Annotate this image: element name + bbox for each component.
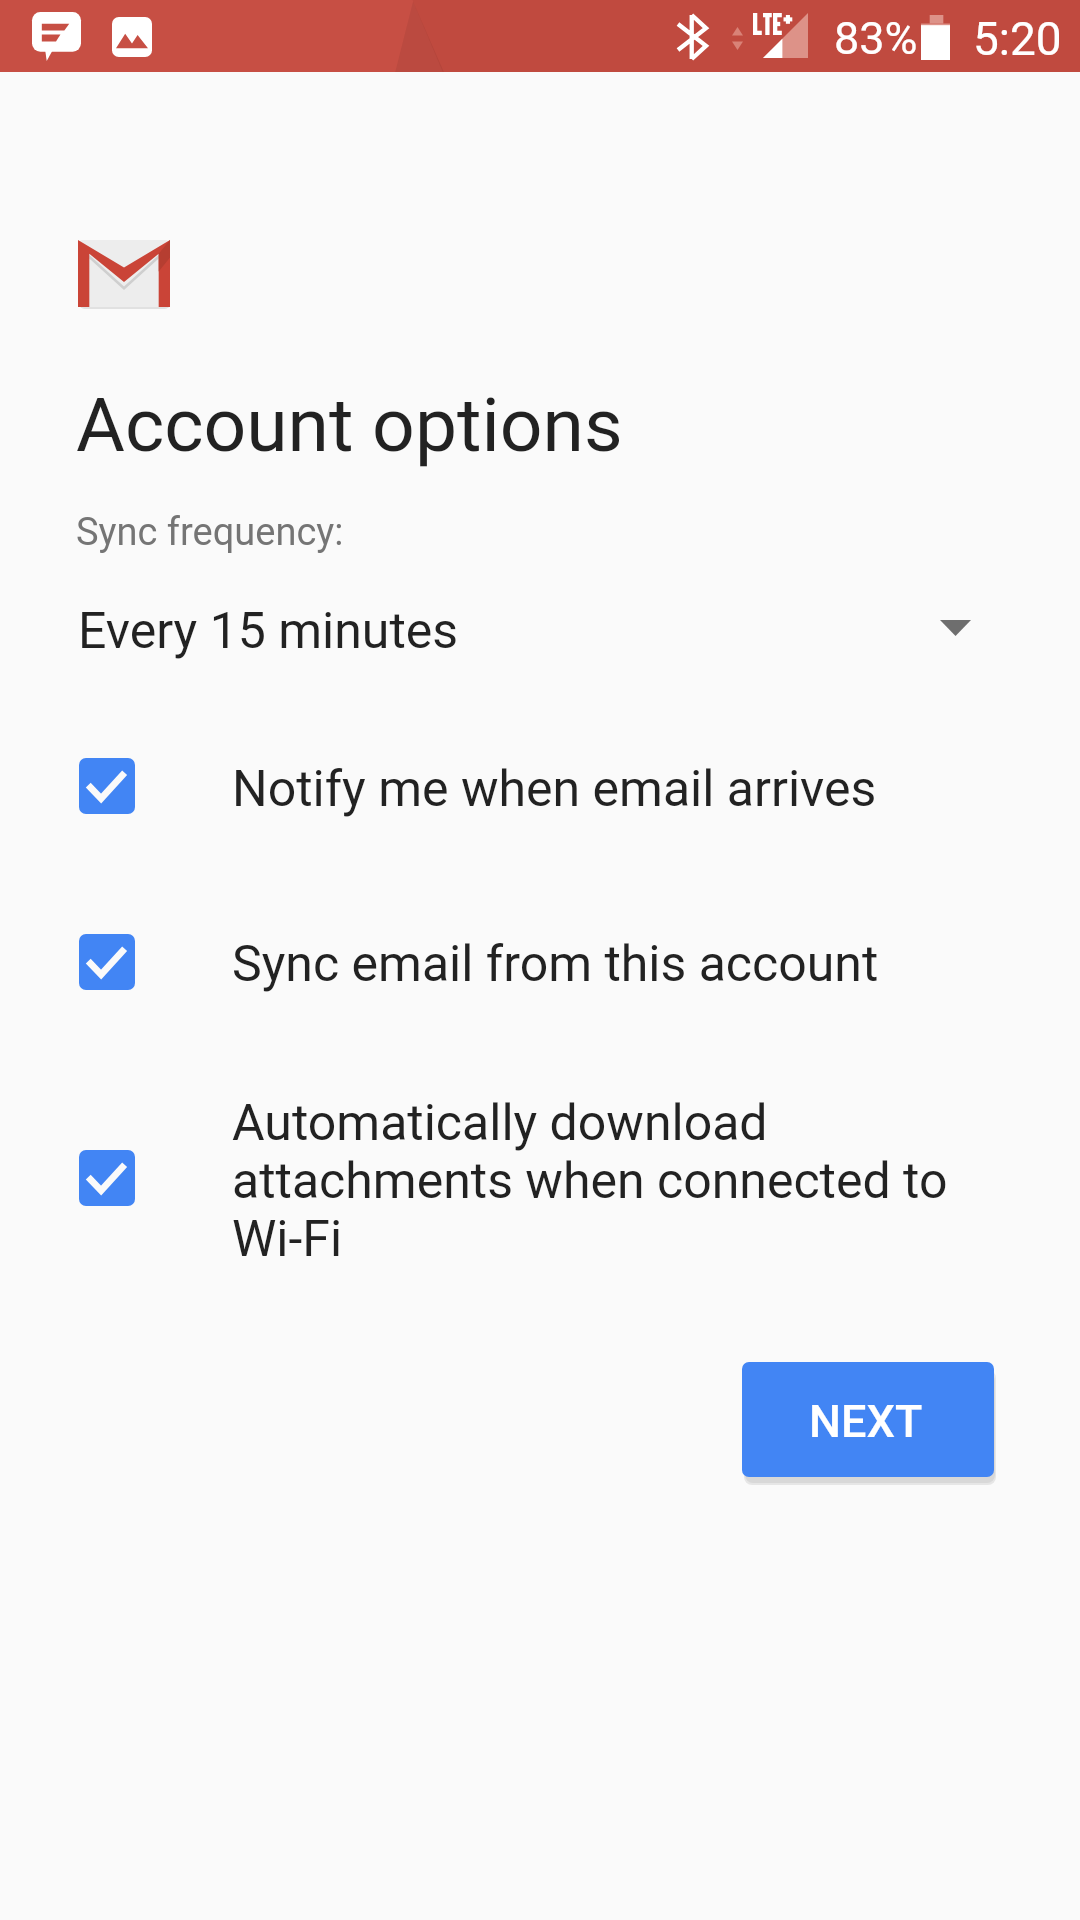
other: Bluetooth on	[678, 15, 706, 59]
staticText: Sync frequency:	[76, 510, 344, 555]
button[interactable]: Notify me when email arrives	[0, 732, 1080, 848]
staticText: 5:20	[973, 12, 1062, 66]
button[interactable]: Every 15 minutes	[0, 594, 1080, 668]
button[interactable]: Sync email from this account	[0, 908, 1080, 1023]
button[interactable]: NEXT	[742, 1362, 994, 1477]
staticText: Every 15 minutes	[78, 602, 459, 661]
staticText: Sync email from this account	[232, 935, 879, 994]
staticText: Notify me when email arrives	[232, 760, 877, 819]
staticText: Automatically download attachments when …	[232, 1094, 1007, 1258]
staticText: 83%	[834, 12, 918, 65]
button[interactable]: Automatically download attachments when …	[0, 1068, 1080, 1232]
other: Messages notification	[32, 12, 81, 61]
staticText: Account options	[76, 381, 623, 469]
staticText: NEXT	[809, 1395, 923, 1448]
other: Screenshot captured	[112, 17, 152, 57]
